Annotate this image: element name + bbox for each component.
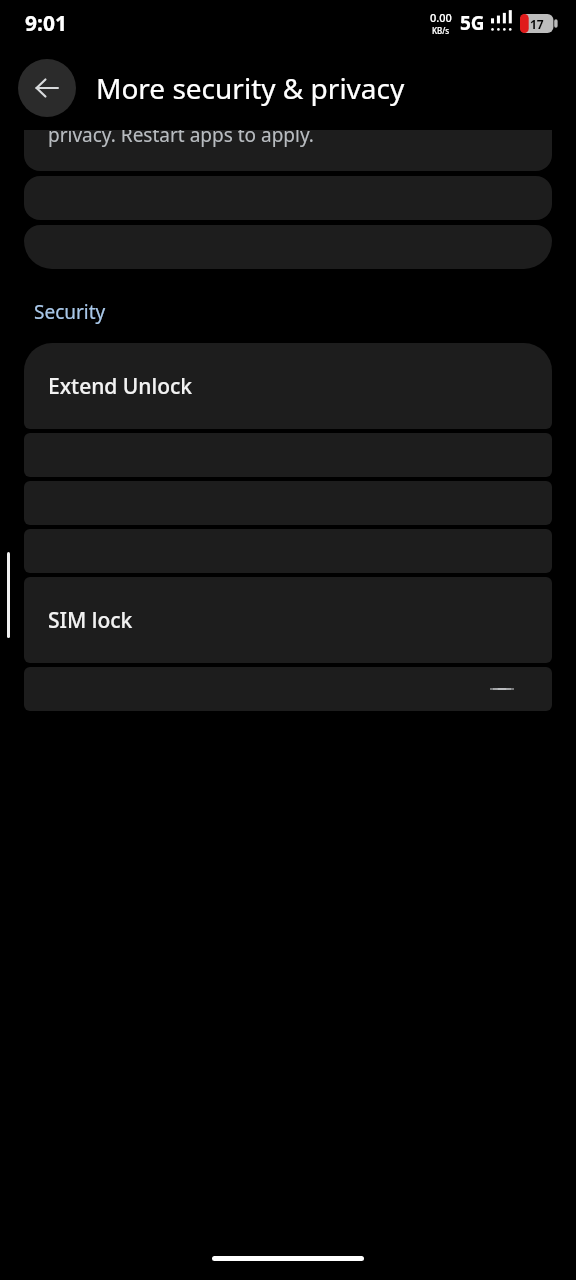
staticText: Extend Unlock — [48, 372, 193, 401]
staticText: 17 — [530, 16, 544, 32]
button[interactable]: Keybox attestation override — [24, 667, 552, 711]
button[interactable]: Back — [18, 59, 76, 117]
staticText: 5G — [460, 10, 485, 36]
staticText: More security & privacy — [96, 69, 405, 107]
button[interactable]: Override MockLocation restriction — [24, 225, 552, 269]
staticText: privacy. Restart apps to apply. — [48, 130, 314, 148]
button[interactable]: SIM lock — [24, 577, 552, 663]
staticText: Security — [34, 299, 106, 325]
staticText: 9:01 — [25, 9, 67, 38]
button[interactable]: privacy. Restart apps to apply. — [24, 130, 552, 171]
staticText: SIM lock — [48, 606, 133, 635]
staticText: KB/s — [432, 25, 450, 36]
button[interactable]: Extend Unlock — [24, 343, 552, 429]
staticText: 0.00 — [430, 10, 452, 25]
